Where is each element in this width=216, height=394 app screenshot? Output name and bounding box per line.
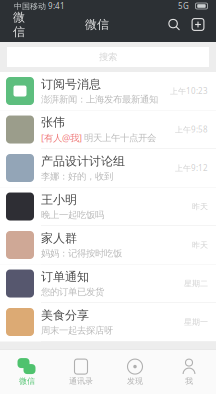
button[interactable]: 我	[162, 350, 216, 394]
staticText: 晚上一起吃饭吗	[41, 209, 104, 221]
button[interactable]: 搜索	[165, 16, 183, 32]
staticText: 星期二	[184, 279, 208, 288]
staticText: 张伟	[41, 115, 65, 130]
staticText: 通讯录	[69, 376, 93, 386]
staticText: 昨天	[192, 240, 208, 250]
staticText: 澎湃新闻：上海发布最新通知	[41, 94, 158, 105]
staticText: 订阅号消息	[41, 77, 101, 92]
staticText: 家人群	[41, 231, 77, 246]
button[interactable]: 订单通知	[0, 264, 216, 303]
staticText: 微信	[85, 17, 109, 32]
button[interactable]: 通讯录	[54, 350, 108, 394]
staticText: 5G	[178, 1, 189, 11]
staticText: 发现	[127, 376, 143, 386]
staticText: 美食分享	[41, 308, 89, 323]
staticText: 中国移动 9:41	[14, 1, 65, 11]
staticText: 搜索	[99, 51, 117, 63]
staticText: 微信	[19, 376, 35, 386]
button[interactable]: 张伟	[0, 110, 216, 149]
staticText: 明天上午十点开会	[84, 132, 156, 144]
staticText: 妈妈：记得按时吃饭	[41, 248, 122, 259]
button[interactable]: 家人群	[0, 226, 216, 264]
button[interactable]: 产品设计讨论组	[0, 149, 216, 187]
staticText: 王小明	[41, 192, 77, 207]
staticText: [有人@我]	[41, 132, 84, 144]
staticText: 上午10:23	[170, 86, 208, 96]
staticText: 订单通知	[41, 269, 89, 284]
staticText: 星期一	[184, 317, 208, 327]
staticText: 产品设计讨论组	[41, 154, 125, 169]
button[interactable]: 订阅号消息	[0, 72, 216, 110]
button[interactable]: 更多功能	[189, 16, 207, 32]
staticText: 您的订单已发货	[41, 286, 104, 298]
button[interactable]: 美食分享	[0, 303, 216, 341]
button[interactable]: 发现	[108, 350, 162, 394]
button[interactable]: 微信	[0, 350, 54, 394]
staticText: 周末一起去探店呀	[41, 325, 113, 336]
staticText: 我	[185, 376, 193, 386]
staticText: 上午9:58	[175, 124, 208, 135]
staticText: 昨天	[192, 202, 208, 211]
button[interactable]: 搜索	[0, 42, 216, 72]
staticText: 微信	[13, 10, 25, 39]
button[interactable]: 王小明	[0, 187, 216, 226]
button[interactable]: 微信	[9, 17, 29, 31]
staticText: 李娜：好的，收到	[41, 171, 113, 182]
staticText: 上午9:12	[175, 163, 208, 173]
